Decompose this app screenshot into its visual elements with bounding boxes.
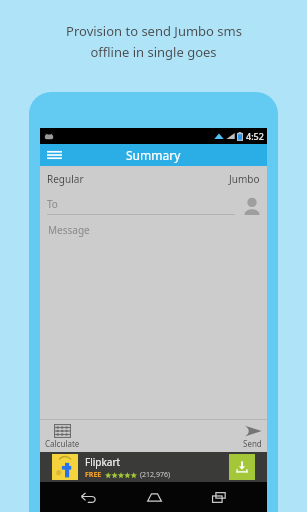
staticText: Provision to send Jumbo sms — [66, 22, 242, 40]
staticText: (212,976) — [140, 470, 171, 480]
button[interactable]: To — [47, 197, 235, 215]
button[interactable]: Home — [137, 482, 171, 512]
staticText: Send — [243, 438, 262, 449]
staticText: offline in single goes — [90, 43, 217, 61]
button[interactable]: Back — [71, 482, 105, 512]
button[interactable]: Install — [229, 454, 255, 480]
staticText: Jumbo — [229, 172, 260, 186]
button[interactable]: Flipkart — [52, 452, 255, 482]
staticText: Message — [48, 223, 90, 237]
staticText: Summary — [126, 147, 181, 163]
staticText: To — [47, 197, 58, 211]
button[interactable]: Send — [243, 424, 262, 449]
staticText: Flipkart — [85, 455, 121, 469]
button[interactable]: Calculate — [45, 424, 80, 449]
staticText: Regular — [47, 172, 84, 186]
button[interactable]: Open navigation drawer — [42, 144, 66, 166]
staticText: Calculate — [45, 438, 80, 449]
staticText: 4:52 — [246, 130, 264, 142]
button[interactable]: Jumbo — [229, 172, 260, 186]
staticText: FREE — [85, 470, 102, 480]
button[interactable]: Recent apps — [202, 482, 236, 512]
button[interactable]: Regular — [47, 172, 84, 186]
button[interactable]: Pick contact — [241, 195, 263, 217]
